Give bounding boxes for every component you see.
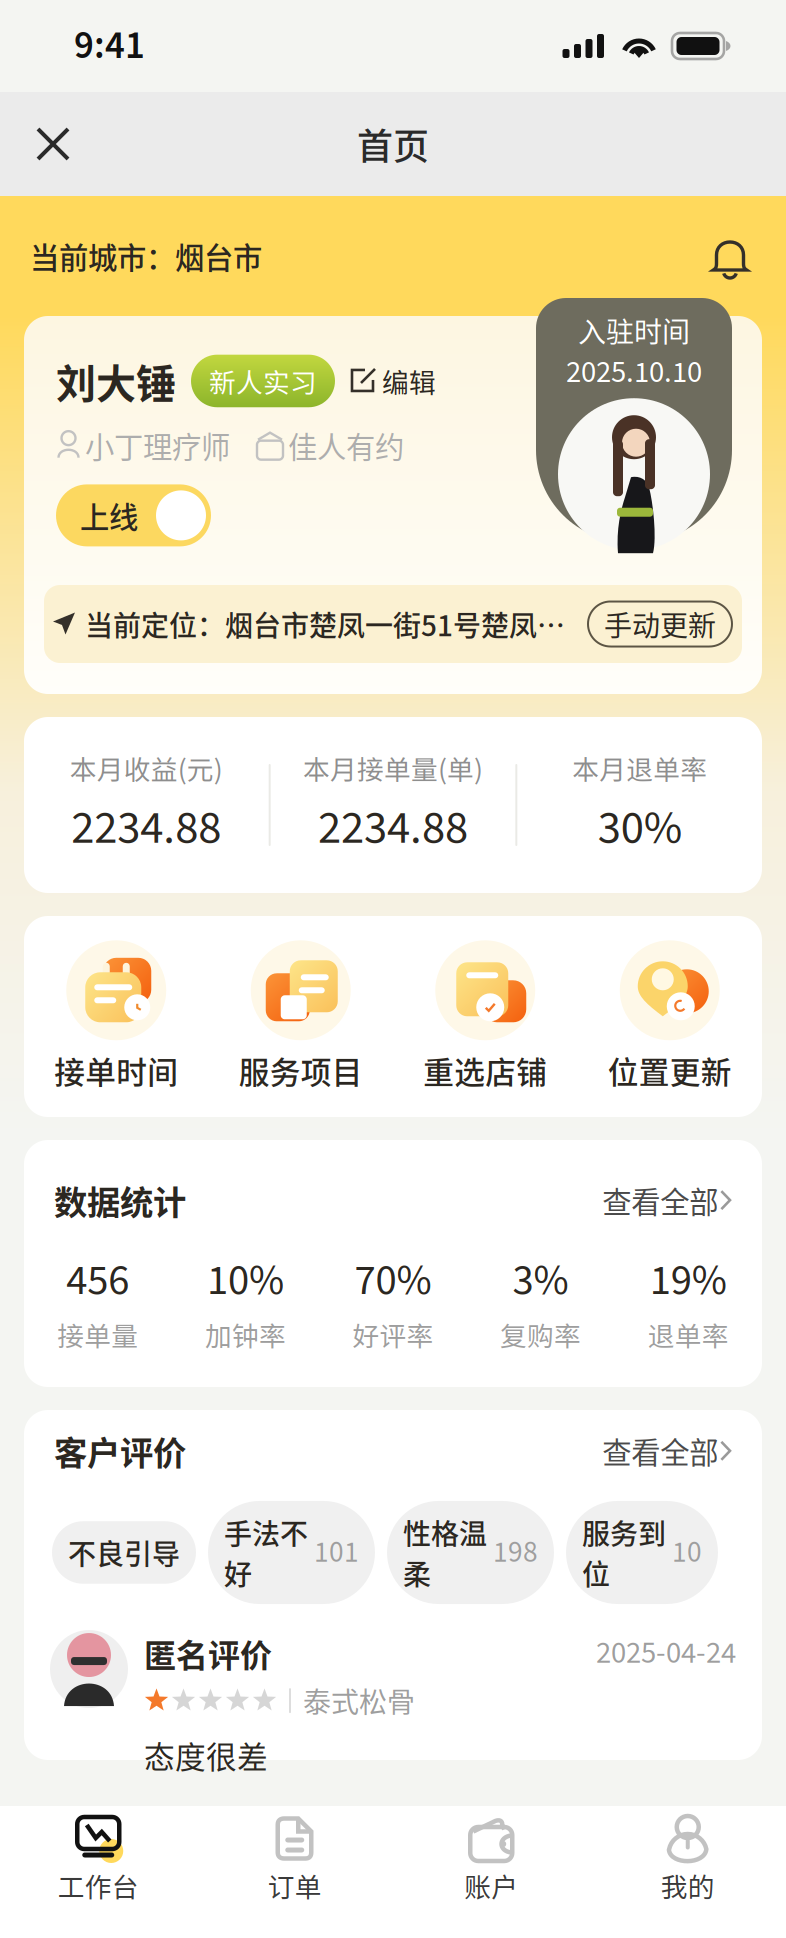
button[interactable]: 我的 [589,1816,786,1905]
staticText: 好评率 [352,1315,433,1354]
staticText: 客户评价 [54,1427,186,1475]
staticText: 2025-04-24 [596,1631,736,1675]
button[interactable]: 查看全部 [602,1179,732,1221]
staticText: 我的 [661,1866,715,1905]
staticText: 不良引导 [68,1532,180,1573]
staticText: 查看全部 [602,1430,718,1472]
staticText: 当前定位：烟台市楚凤一街51号楚凤花园 [85,604,582,644]
staticText: 手动更新 [604,604,716,644]
staticText: 入驻时间 [578,310,690,350]
button[interactable]: 性格温柔 [387,1501,554,1604]
staticText: 10 [672,1532,702,1573]
staticText: 当前城市：烟台市 [30,235,262,277]
button[interactable]: 上线 [56,484,211,546]
staticText: 2234.88 [318,795,468,862]
staticText: 态度很差 [144,1733,268,1777]
staticText: 2025.10.10 [566,350,702,394]
button[interactable]: 服务到位 [566,1501,718,1604]
staticText: 101 [314,1532,359,1573]
staticText: 服务项目 [239,1048,363,1093]
staticText: 新人实习 [209,362,317,400]
staticText: 位置更新 [608,1048,732,1093]
staticText: 匿名评价 [144,1630,272,1676]
button[interactable]: 接单时间 [24,940,208,1093]
button[interactable]: 编辑 [335,362,436,400]
staticText: 456 [66,1250,129,1311]
staticText: 本月退单率 [572,748,707,787]
staticText: 加钟率 [205,1315,286,1354]
button[interactable]: Close [18,109,88,179]
staticText: 本月收益(元) [70,748,223,787]
button[interactable]: Notifications [708,232,752,280]
staticText: 2234.88 [71,795,221,862]
staticText: 19% [650,1250,727,1311]
staticText: 小丁理疗师 [85,424,230,466]
staticText: 编辑 [382,362,436,400]
staticText: 198 [493,1532,538,1573]
staticText: 30% [598,795,682,862]
staticText: 10% [207,1250,284,1311]
staticText: 账户 [464,1866,518,1905]
button[interactable]: 订单 [196,1816,393,1905]
button[interactable]: 手动更新 [588,601,732,646]
staticText: 佳人有约 [288,424,404,466]
staticText: 重选店铺 [423,1048,547,1093]
button[interactable]: 不良引导 [52,1521,196,1584]
button[interactable]: 账户 [393,1816,589,1905]
staticText: 服务到位 [582,1512,666,1593]
button[interactable]: 位置更新 [577,940,762,1093]
staticText: 首页 [357,118,429,170]
staticText: 订单 [268,1866,322,1905]
staticText: 查看全部 [602,1179,718,1221]
button[interactable]: 查看全部 [602,1430,732,1472]
staticText: 本月接单量(单) [303,748,483,787]
staticText: 上线 [80,494,138,537]
staticText: 3% [513,1250,569,1311]
staticText: 接单时间 [54,1048,178,1093]
staticText: 70% [354,1250,431,1311]
staticText: 退单率 [648,1315,729,1354]
staticText: 接单量 [57,1315,138,1354]
button[interactable]: 手法不好 [208,1501,375,1604]
staticText: 刘大锤 [56,352,176,410]
staticText: 工作台 [58,1866,139,1905]
staticText: 数据统计 [54,1176,186,1224]
staticText: 性格温柔 [403,1512,487,1593]
staticText: 复购率 [500,1315,581,1354]
button[interactable]: 重选店铺 [393,940,577,1093]
staticText: 泰式松骨 [303,1680,415,1721]
button[interactable]: 服务项目 [208,940,393,1093]
staticText: 9:41 [74,18,145,74]
button[interactable]: 工作台 [0,1816,196,1905]
staticText: 手法不好 [224,1512,308,1593]
